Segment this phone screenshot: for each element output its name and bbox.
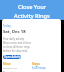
staticText: Activity Rings — [14, 12, 50, 20]
staticText: Your daily activity — [3, 37, 25, 41]
staticText: Move — [3, 62, 11, 66]
button[interactable]: Open Activity — [3, 55, 21, 59]
staticText: Exercise — [3, 71, 15, 72]
staticText: Open Activity — [4, 55, 21, 59]
staticText: 6,420 steps — [32, 66, 46, 70]
staticText: Steps — [32, 62, 40, 66]
staticText: Sat, Dec 18 — [3, 29, 26, 35]
staticText: before the day ends. — [3, 49, 28, 53]
staticText: to close all three rings — [3, 45, 30, 49]
staticText: Move more and sit less — [3, 41, 31, 45]
staticText: 320/400 CAL — [3, 66, 18, 69]
staticText: Today — [3, 24, 11, 28]
staticText: Close Your — [18, 3, 47, 11]
